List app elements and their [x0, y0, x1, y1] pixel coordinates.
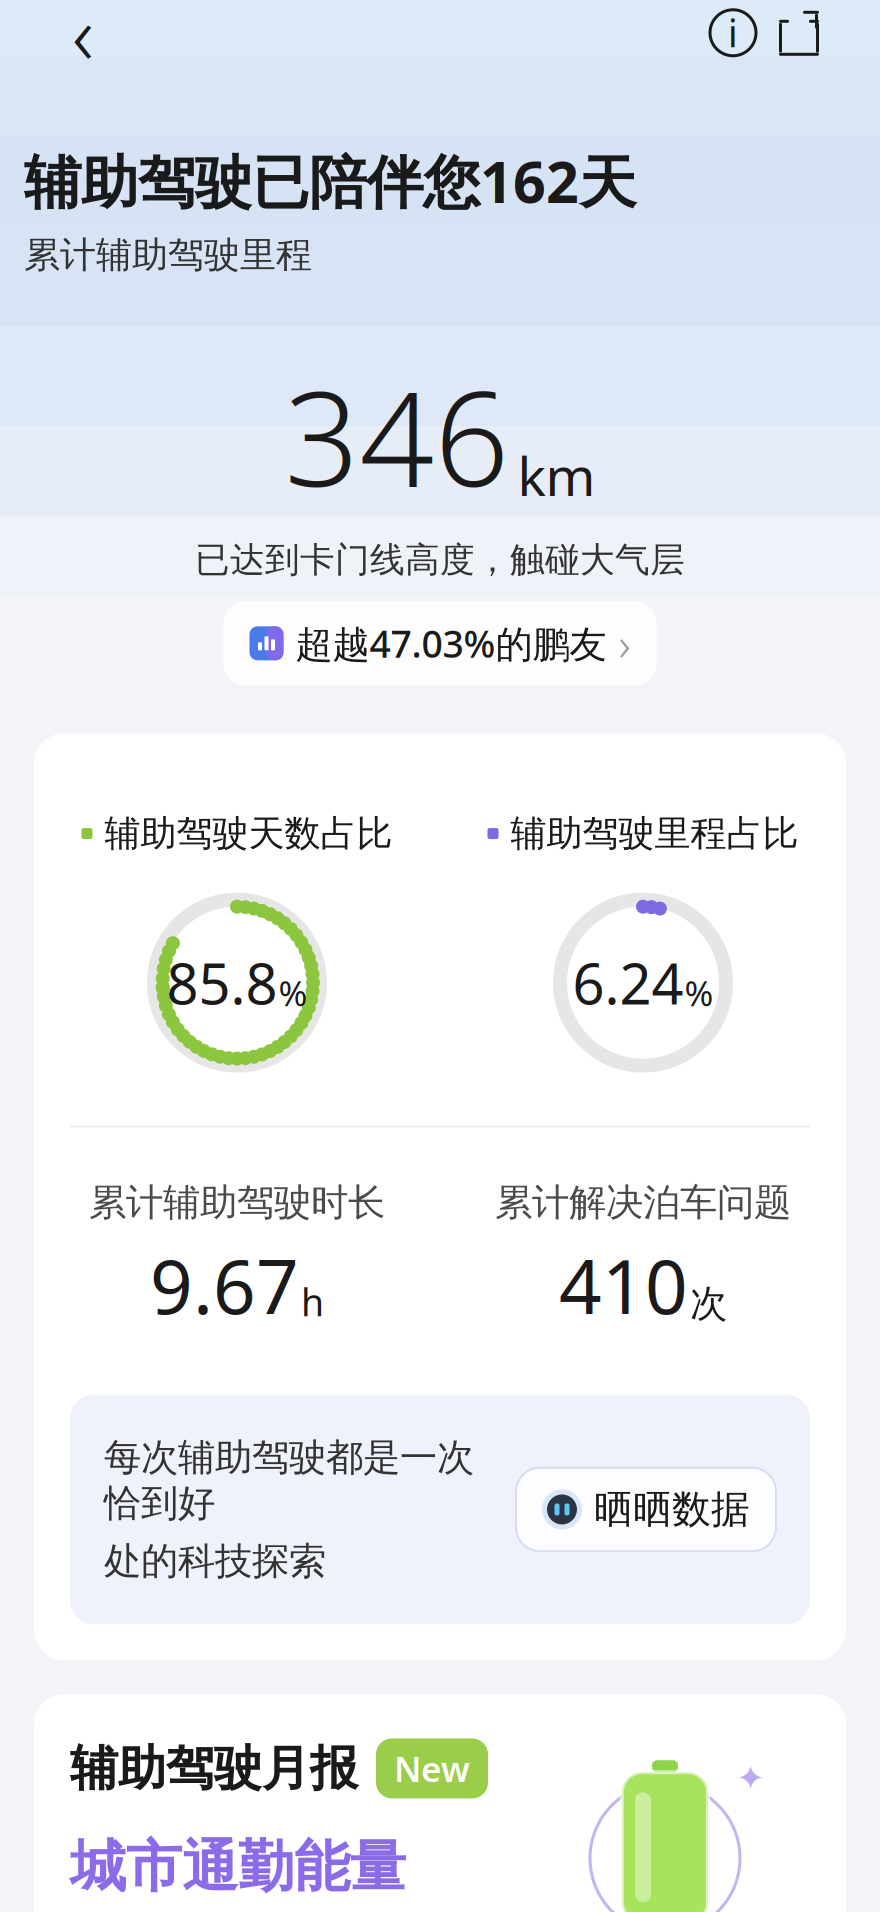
staticText: i	[728, 8, 738, 58]
staticText: 辅助驾驶天数占比	[104, 811, 392, 856]
staticText: 已达到卡门线高度，触碰大气层	[195, 539, 685, 581]
staticText: 346	[284, 349, 509, 523]
staticText: 超越47.03%的鹏友	[295, 618, 606, 668]
staticText: %	[684, 970, 713, 1016]
staticText: 6.24	[572, 945, 683, 1020]
staticText: 次	[690, 1281, 727, 1327]
staticText: 85.8	[166, 945, 277, 1020]
staticText: %	[278, 970, 307, 1016]
staticText: 辅助驾驶已陪伴您162天	[24, 143, 636, 219]
button[interactable]: 晒晒数据	[516, 1468, 776, 1551]
button[interactable]: Share	[766, 0, 832, 66]
button[interactable]: 超越47.03%的鹏友	[223, 601, 656, 685]
staticText: 9.67	[150, 1235, 299, 1335]
staticText: ‹	[72, 0, 94, 88]
button[interactable]: 辅助驾驶月报	[34, 1694, 846, 1912]
staticText: 累计辅助驾驶里程	[24, 233, 312, 277]
staticText: ✦	[736, 1758, 765, 1797]
staticText: ›	[618, 613, 630, 673]
staticText: 累计辅助驾驶时长	[89, 1180, 385, 1225]
staticText: 辅助驾驶里程占比	[510, 811, 798, 856]
staticText: New	[394, 1745, 470, 1791]
staticText: 每次辅助驾驶都是一次恰到好	[104, 1435, 474, 1526]
staticText: 累计解决泊车问题	[495, 1180, 791, 1225]
staticText: 处的科技探索	[104, 1538, 326, 1584]
staticText: 城市通勤能量	[70, 1832, 406, 1901]
staticText: 晒晒数据	[594, 1486, 750, 1533]
staticText: h	[301, 1277, 324, 1327]
button[interactable]: Back	[48, 0, 118, 68]
staticText: km	[517, 440, 595, 511]
staticText: 辅助驾驶月报	[70, 1739, 358, 1798]
staticText: 410	[559, 1235, 688, 1335]
button[interactable]: Information	[700, 0, 766, 66]
